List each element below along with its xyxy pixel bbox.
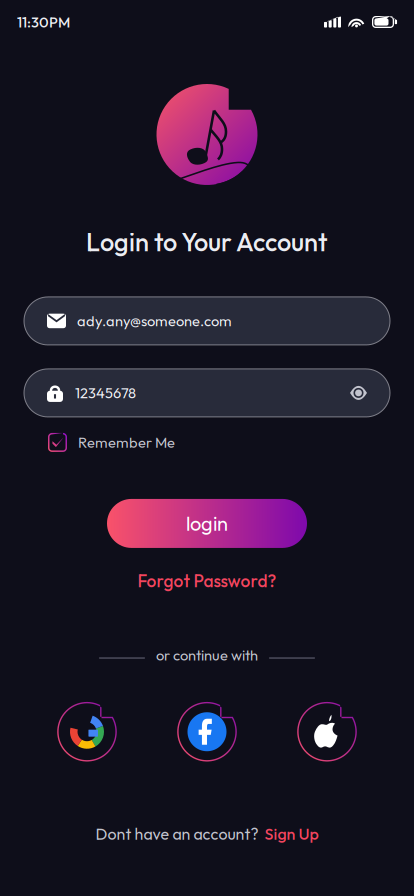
button[interactable]: Continue with Google: [56, 701, 117, 762]
staticText: Forgot Password?: [137, 570, 276, 592]
staticText: Sign Up: [264, 824, 318, 844]
button[interactable]: Forgot Password?: [137, 570, 276, 592]
button[interactable]: Sign Up: [264, 824, 318, 844]
staticText: ady.any@someone.com: [77, 312, 232, 330]
button[interactable]: Continue with Facebook: [176, 701, 237, 762]
staticText: Remember Me: [78, 433, 175, 452]
button[interactable]: Remember Me: [48, 433, 175, 452]
staticText: 12345678: [75, 384, 136, 402]
staticText: Login to Your Account: [86, 226, 328, 258]
staticText: login: [186, 511, 228, 536]
button[interactable]: Continue with Apple: [296, 701, 357, 762]
staticText: 11:30PM: [17, 13, 70, 31]
staticText: Dont have an account?: [95, 824, 258, 844]
button[interactable]: login: [107, 499, 307, 548]
staticText: or continue with: [156, 646, 258, 664]
